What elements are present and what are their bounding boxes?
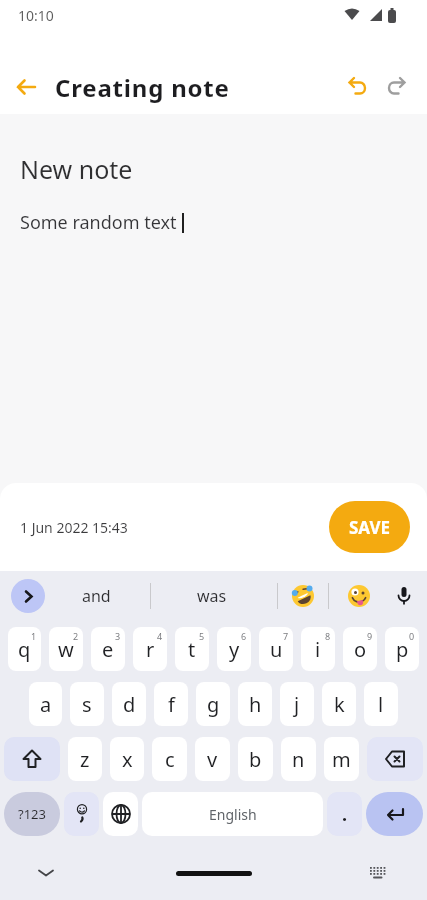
- button[interactable]: k: [322, 682, 356, 726]
- staticText: l: [378, 691, 384, 718]
- staticText: New note: [20, 152, 133, 186]
- staticText: n: [292, 746, 305, 773]
- staticText: 2: [73, 630, 79, 642]
- staticText: h: [249, 691, 262, 718]
- button[interactable]: ?123: [4, 792, 60, 836]
- button[interactable]: f: [154, 682, 188, 726]
- staticText: was: [197, 585, 227, 607]
- button[interactable]: g: [196, 682, 230, 726]
- staticText: g: [207, 691, 220, 718]
- button[interactable]: English: [142, 792, 323, 836]
- staticText: d: [123, 691, 136, 718]
- button[interactable]: [369, 866, 387, 880]
- staticText: y: [229, 636, 240, 663]
- button[interactable]: was: [174, 571, 250, 621]
- staticText: 3: [115, 630, 121, 642]
- staticText: 6: [241, 630, 247, 642]
- button[interactable]: [394, 586, 414, 606]
- staticText: r: [146, 636, 155, 663]
- button[interactable]: [4, 737, 60, 781]
- button[interactable]: s: [70, 682, 104, 726]
- button[interactable]: a: [29, 682, 62, 726]
- staticText: t: [188, 636, 196, 663]
- staticText: w: [58, 636, 74, 663]
- button[interactable]: [103, 792, 138, 836]
- button[interactable]: x: [110, 737, 144, 781]
- staticText: j: [294, 691, 300, 718]
- staticText: 5: [199, 630, 205, 642]
- button[interactable]: [341, 70, 375, 104]
- button[interactable]: [8, 69, 44, 105]
- button[interactable]: r: [133, 627, 167, 671]
- button[interactable]: n: [281, 737, 316, 781]
- button[interactable]: z: [68, 737, 102, 781]
- button[interactable]: e: [91, 627, 125, 671]
- button[interactable]: .: [327, 792, 362, 836]
- button[interactable]: c: [152, 737, 187, 781]
- staticText: English: [209, 805, 257, 824]
- staticText: 7: [283, 630, 289, 642]
- staticText: c: [165, 746, 175, 773]
- staticText: s: [82, 691, 92, 718]
- button[interactable]: i: [301, 627, 335, 671]
- staticText: x: [122, 746, 133, 773]
- button[interactable]: h: [238, 682, 272, 726]
- staticText: e: [102, 636, 114, 663]
- button[interactable]: and: [58, 571, 134, 621]
- staticText: k: [334, 691, 345, 718]
- staticText: 1 Jun 2022 15:43: [20, 518, 128, 537]
- staticText: and: [82, 585, 111, 607]
- staticText: 8: [325, 630, 331, 642]
- staticText: p: [396, 636, 409, 663]
- staticText: i: [315, 636, 321, 663]
- staticText: Creating note: [55, 71, 230, 104]
- staticText: 10:10: [18, 6, 54, 25]
- button[interactable]: b: [238, 737, 273, 781]
- staticText: b: [249, 746, 262, 773]
- staticText: m: [332, 746, 351, 773]
- staticText: 9: [367, 630, 373, 642]
- button[interactable]: [64, 792, 99, 836]
- button[interactable]: [11, 579, 45, 613]
- button[interactable]: d: [112, 682, 146, 726]
- staticText: .: [342, 802, 348, 827]
- button[interactable]: m: [324, 737, 359, 781]
- staticText: f: [168, 691, 175, 718]
- button[interactable]: [38, 869, 54, 877]
- button[interactable]: [367, 737, 423, 781]
- button[interactable]: SAVE: [329, 501, 410, 553]
- button[interactable]: o: [343, 627, 377, 671]
- staticText: o: [354, 636, 367, 663]
- staticText: 1: [31, 630, 37, 642]
- button[interactable]: t: [175, 627, 209, 671]
- button[interactable]: [366, 792, 423, 836]
- staticText: ?123: [18, 805, 46, 823]
- button[interactable]: j: [280, 682, 314, 726]
- button[interactable]: v: [195, 737, 230, 781]
- button[interactable]: y: [217, 627, 251, 671]
- staticText: SAVE: [349, 516, 391, 539]
- staticText: q: [18, 636, 31, 663]
- button[interactable]: l: [364, 682, 398, 726]
- button[interactable]: q: [8, 627, 41, 671]
- staticText: z: [80, 746, 90, 773]
- button[interactable]: [379, 70, 413, 104]
- staticText: a: [40, 691, 52, 718]
- staticText: Some random text: [20, 210, 182, 235]
- staticText: 0: [409, 630, 415, 642]
- button[interactable]: u: [259, 627, 293, 671]
- staticText: 4: [157, 630, 163, 642]
- button[interactable]: w: [49, 627, 83, 671]
- staticText: v: [207, 746, 218, 773]
- button[interactable]: p: [385, 627, 419, 671]
- staticText: u: [270, 636, 283, 663]
